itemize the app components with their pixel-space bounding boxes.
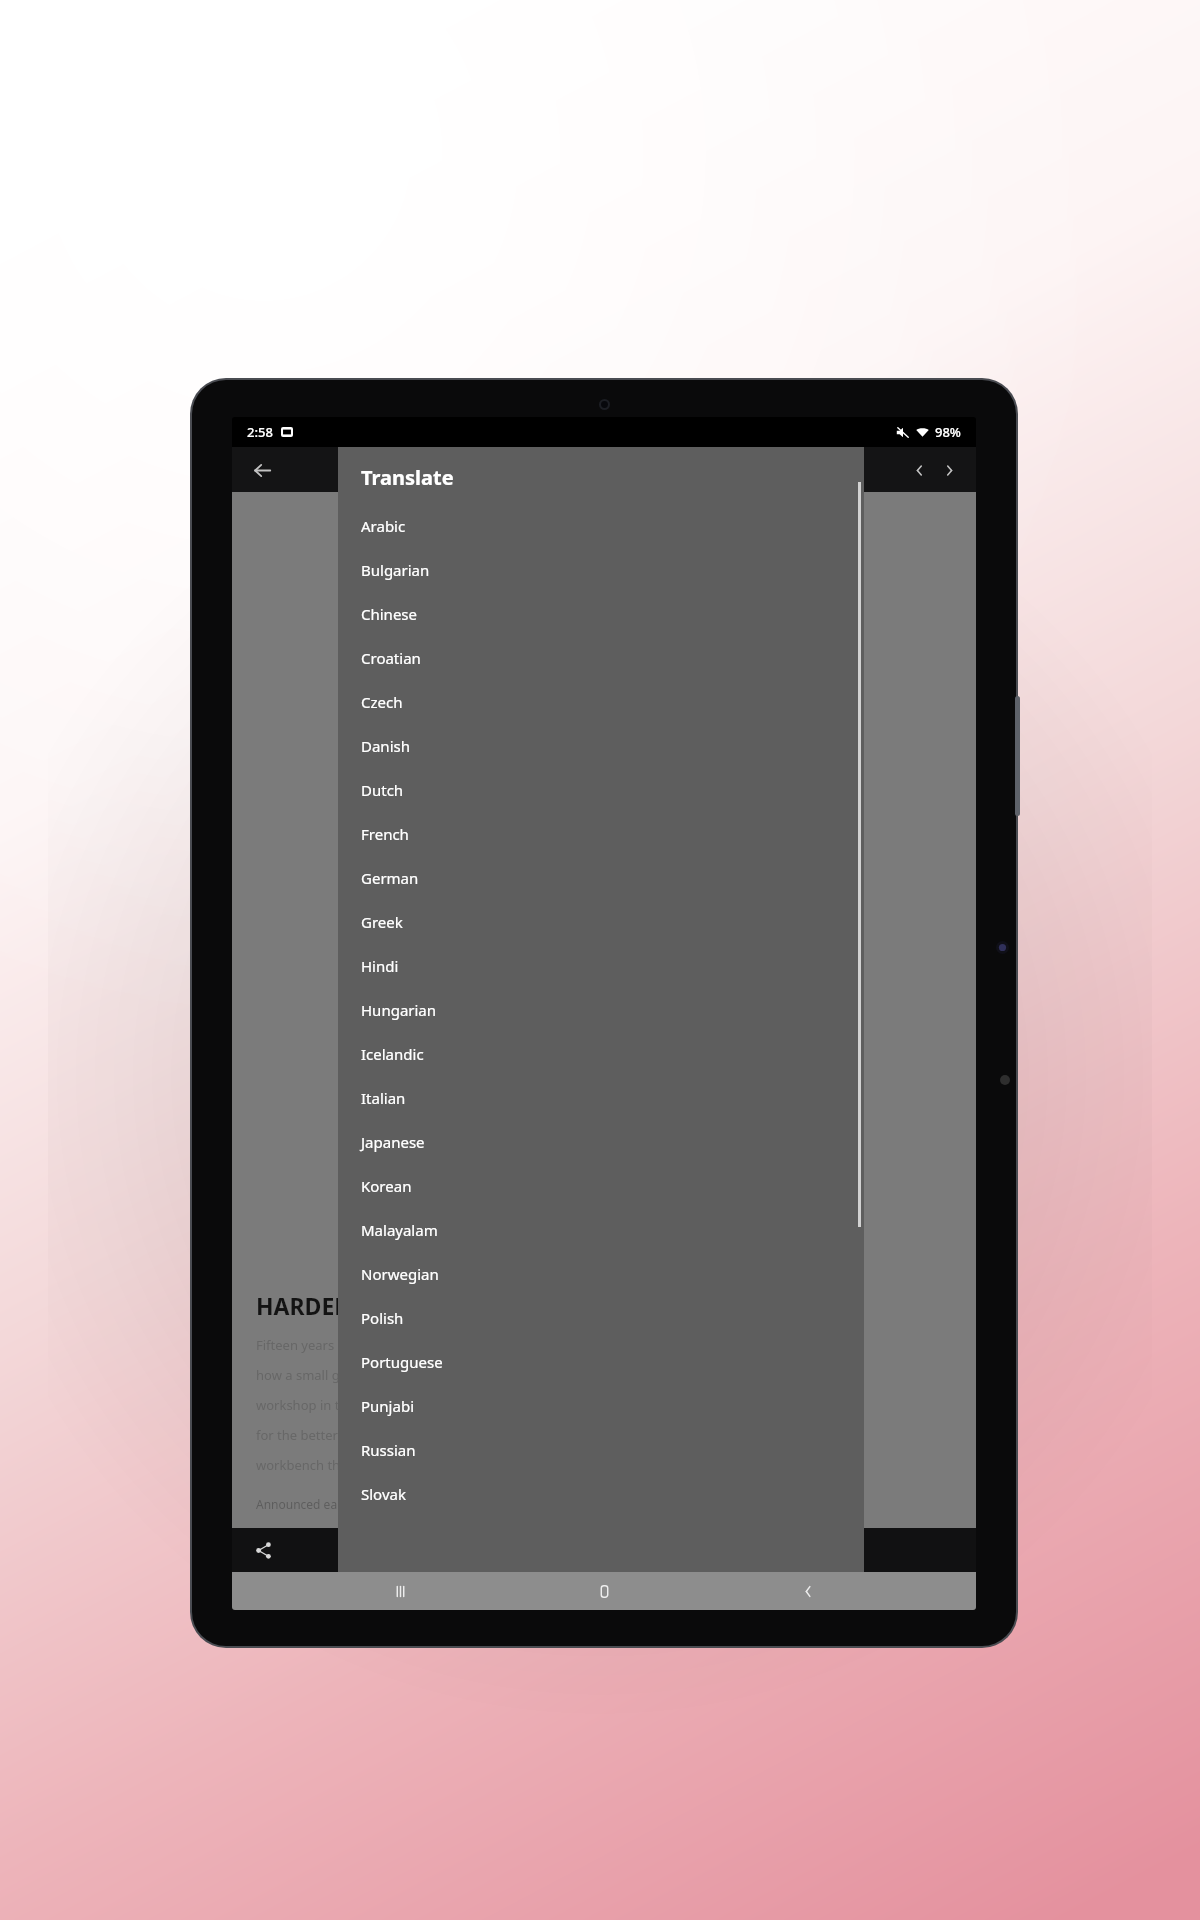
staticText: Portuguese bbox=[361, 1352, 443, 1372]
button[interactable]: Arabic bbox=[338, 504, 864, 548]
staticText: workbench that started it all. bbox=[256, 1456, 432, 1474]
button[interactable]: Slovak bbox=[338, 1472, 864, 1516]
staticText: Announced earlier this week, the revised… bbox=[256, 1496, 694, 1512]
staticText: Danish bbox=[361, 736, 410, 756]
button[interactable]: Norwegian bbox=[338, 1252, 864, 1296]
staticText: Bulgarian bbox=[361, 560, 430, 580]
button[interactable]: Previous bbox=[904, 455, 934, 485]
button[interactable]: Russian bbox=[338, 1428, 864, 1472]
button[interactable]: Share bbox=[246, 1533, 280, 1567]
button[interactable]: Icelandic bbox=[338, 1032, 864, 1076]
button[interactable]: Croatian bbox=[338, 636, 864, 680]
button[interactable]: Greek bbox=[338, 900, 864, 944]
staticText: Fifteen years on from the first attempt,… bbox=[256, 1336, 592, 1354]
button[interactable]: Korean bbox=[338, 1164, 864, 1208]
staticText: Slovak bbox=[361, 1484, 406, 1504]
button[interactable]: Japanese bbox=[338, 1120, 864, 1164]
staticText: Chinese bbox=[361, 604, 417, 624]
button[interactable]: Hungarian bbox=[338, 988, 864, 1032]
button[interactable]: Polish bbox=[338, 1296, 864, 1340]
staticText: HARDER THAN IT LOOKS bbox=[256, 1290, 532, 1321]
staticText: Dutch bbox=[361, 780, 404, 800]
button[interactable]: Back bbox=[772, 1572, 844, 1610]
button[interactable]: Danish bbox=[338, 724, 864, 768]
staticText: Greek bbox=[361, 912, 403, 932]
staticText: Russian bbox=[361, 1440, 416, 1460]
staticText: 98% bbox=[935, 423, 961, 441]
button[interactable]: German bbox=[338, 856, 864, 900]
button[interactable]: Back bbox=[241, 449, 283, 491]
button[interactable]: Punjabi bbox=[338, 1384, 864, 1428]
button[interactable]: Next bbox=[934, 455, 964, 485]
button[interactable]: Bulgarian bbox=[338, 548, 864, 592]
staticText: German bbox=[361, 868, 419, 888]
staticText: Punjabi bbox=[361, 1396, 414, 1416]
button[interactable]: Czech bbox=[338, 680, 864, 724]
staticText: Korean bbox=[361, 1176, 412, 1196]
staticText: how a small group of determined engineer… bbox=[256, 1366, 580, 1384]
button[interactable]: Malayalam bbox=[338, 1208, 864, 1252]
staticText: Croatian bbox=[361, 648, 421, 668]
staticText: Norwegian bbox=[361, 1264, 439, 1284]
button[interactable]: Chinese bbox=[338, 592, 864, 636]
staticText: Icelandic bbox=[361, 1044, 424, 1064]
button[interactable]: French bbox=[338, 812, 864, 856]
button[interactable]: Hindi bbox=[338, 944, 864, 988]
staticText: Czech bbox=[361, 692, 403, 712]
staticText: French bbox=[361, 824, 409, 844]
button[interactable]: Italian bbox=[338, 1076, 864, 1120]
staticText: Italian bbox=[361, 1088, 406, 1108]
button[interactable]: Recents bbox=[364, 1572, 436, 1610]
staticText: Arabic bbox=[361, 516, 406, 536]
staticText: 2:58 bbox=[247, 423, 273, 441]
staticText: Hungarian bbox=[361, 1000, 437, 1020]
staticText: for the better part of a decade, quietly… bbox=[256, 1426, 569, 1444]
staticText: workshop in the suburbs into something t… bbox=[256, 1396, 604, 1414]
staticText: Polish bbox=[361, 1308, 404, 1328]
button[interactable]: Dutch bbox=[338, 768, 864, 812]
staticText: Translate bbox=[361, 464, 454, 491]
staticText: Malayalam bbox=[361, 1220, 438, 1240]
button[interactable]: Portuguese bbox=[338, 1340, 864, 1384]
staticText: Hindi bbox=[361, 956, 399, 976]
staticText: Japanese bbox=[361, 1132, 425, 1152]
button[interactable]: Home bbox=[568, 1572, 640, 1610]
